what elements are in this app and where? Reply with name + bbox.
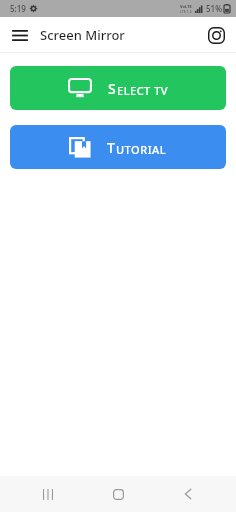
staticText: S <box>108 79 117 98</box>
button[interactable]: Instagram <box>202 21 230 49</box>
staticText: T <box>107 138 116 157</box>
button[interactable]: Recent apps <box>26 476 70 512</box>
staticText: Screen Mirror <box>40 26 125 44</box>
button[interactable]: Open navigation menu <box>6 21 34 49</box>
staticText: 51% <box>206 3 222 14</box>
staticText: VoLTE <box>180 4 192 9</box>
staticText: LTE 1 2 <box>180 9 192 14</box>
button[interactable]: Home <box>96 476 140 512</box>
staticText: UTORIAL <box>116 142 167 157</box>
button[interactable]: S <box>10 66 226 110</box>
button[interactable]: Back <box>166 476 210 512</box>
staticText: 5:19 <box>10 3 26 14</box>
staticText: ELECT TV <box>117 83 169 98</box>
button[interactable]: T <box>10 125 226 169</box>
